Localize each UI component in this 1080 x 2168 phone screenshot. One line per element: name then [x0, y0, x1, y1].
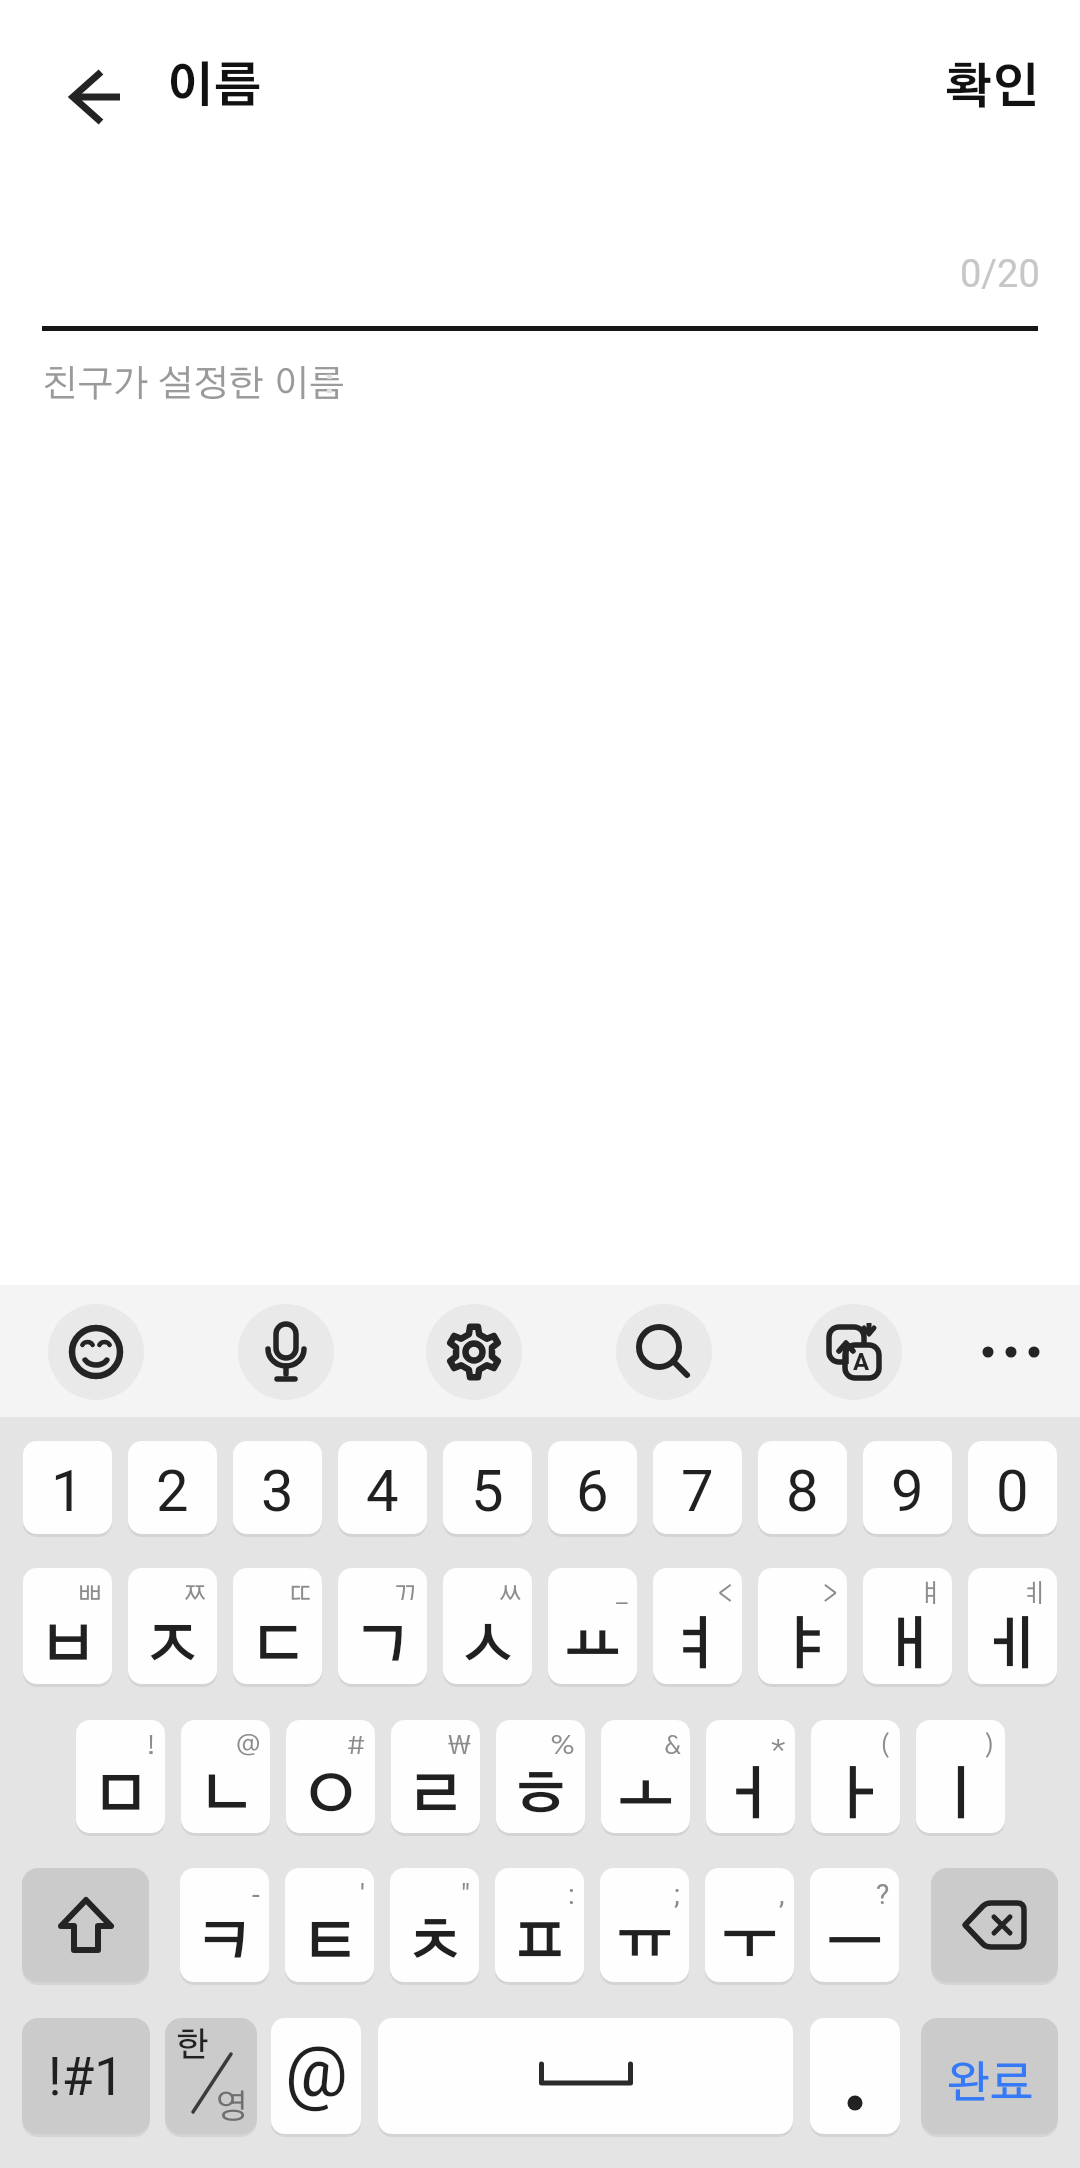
button[interactable]: ,	[705, 1868, 794, 1982]
button[interactable]: ㅒ	[863, 1568, 952, 1684]
button[interactable]	[48, 1304, 144, 1400]
staticText: 5	[471, 1457, 504, 1525]
staticText: ㅠ	[616, 1915, 674, 1973]
staticText: !#1	[48, 2046, 125, 2108]
staticText: ?	[876, 1878, 890, 1911]
staticText: (	[879, 1733, 891, 1759]
staticText: "	[461, 1878, 470, 1911]
staticText: ㄸ	[287, 1581, 313, 1607]
button[interactable]: 5	[443, 1441, 532, 1534]
button[interactable]	[45, 47, 121, 123]
staticText: 0/20	[960, 252, 1040, 297]
staticText: ㅈ	[144, 1618, 202, 1676]
button[interactable]	[22, 1868, 149, 1982]
button[interactable]	[931, 1868, 1058, 1982]
staticText: ㅓ	[722, 1768, 780, 1826]
button[interactable]: '	[285, 1868, 374, 1982]
staticText: 2	[156, 1457, 189, 1525]
staticText: ㅒ	[917, 1581, 943, 1607]
staticText: ㅎ	[512, 1768, 570, 1826]
staticText: ㅅ	[459, 1618, 517, 1676]
button[interactable]: 4	[338, 1441, 427, 1534]
staticText: 완료	[946, 2062, 1034, 2107]
button[interactable]: 8	[758, 1441, 847, 1534]
button[interactable]: 9	[863, 1441, 952, 1534]
staticText: @	[285, 2031, 348, 2113]
button[interactable]: ㄲ	[338, 1568, 427, 1684]
button[interactable]: 1	[23, 1441, 112, 1534]
button[interactable]	[238, 1304, 334, 1400]
button[interactable]: "	[390, 1868, 479, 1982]
button[interactable]: %	[496, 1720, 585, 1833]
staticText: ㅆ	[497, 1581, 523, 1607]
staticText: ㅑ	[774, 1618, 832, 1676]
button[interactable]	[966, 1322, 1056, 1382]
button[interactable]: ㅉ	[128, 1568, 217, 1684]
button[interactable]: -	[180, 1868, 269, 1982]
button[interactable]: ?	[810, 1868, 899, 1982]
staticText: :	[568, 1878, 575, 1911]
button[interactable]: :	[495, 1868, 584, 1982]
button[interactable]	[426, 1304, 522, 1400]
staticText: 한	[176, 2029, 210, 2063]
button[interactable]: *	[706, 1720, 795, 1833]
staticText: #	[347, 1733, 366, 1759]
staticText: -	[252, 1878, 260, 1911]
button[interactable]: 확인	[880, 57, 1040, 121]
staticText: 3	[261, 1457, 294, 1525]
staticText: ㅁ	[92, 1768, 150, 1826]
button[interactable]	[378, 2018, 793, 2134]
button[interactable]: ㅃ	[23, 1568, 112, 1684]
button[interactable]: @	[181, 1720, 270, 1833]
staticText: 8	[786, 1457, 819, 1525]
staticText: A	[853, 1348, 870, 1376]
button[interactable]: 0	[968, 1441, 1057, 1534]
button[interactable]: @	[271, 2018, 361, 2134]
button[interactable]: (	[811, 1720, 900, 1833]
button[interactable]: ㅆ	[443, 1568, 532, 1684]
button[interactable]	[616, 1304, 712, 1400]
button[interactable]	[810, 2018, 900, 2134]
staticText: ;	[674, 1878, 680, 1911]
button[interactable]: )	[916, 1720, 1005, 1833]
button[interactable]: 7	[653, 1441, 742, 1534]
button[interactable]: ₩	[391, 1720, 480, 1833]
staticText: ㅍ	[511, 1915, 569, 1973]
button[interactable]: 완료	[921, 2018, 1058, 2134]
staticText: &	[664, 1733, 681, 1759]
button[interactable]: _	[548, 1568, 637, 1684]
staticText: ㅗ	[617, 1768, 675, 1826]
button[interactable]: 2	[128, 1441, 217, 1534]
button[interactable]: #	[286, 1720, 375, 1833]
button[interactable]: 3	[233, 1441, 322, 1534]
staticText: 영	[215, 2091, 248, 2125]
staticText: *	[771, 1733, 786, 1759]
staticText: 0	[996, 1457, 1029, 1525]
staticText: _	[616, 1581, 628, 1607]
staticText: ㅃ	[77, 1581, 103, 1607]
staticText: ,	[779, 1878, 785, 1911]
button[interactable]: ;	[600, 1868, 689, 1982]
staticText: 6	[576, 1457, 609, 1525]
button[interactable]: !	[76, 1720, 165, 1833]
staticText: 4	[366, 1457, 399, 1525]
button[interactable]: <	[653, 1568, 742, 1684]
button[interactable]: ㅖ	[968, 1568, 1057, 1684]
staticText: ㅕ	[669, 1618, 727, 1676]
staticText: ㅣ	[932, 1768, 990, 1826]
staticText: ㅂ	[39, 1618, 97, 1676]
staticText: ㄲ	[392, 1581, 418, 1607]
staticText: )	[984, 1733, 996, 1759]
button[interactable]: &	[601, 1720, 690, 1833]
staticText: 7	[681, 1457, 714, 1525]
button[interactable]: A	[806, 1304, 902, 1400]
staticText: ㅉ	[182, 1581, 208, 1607]
button[interactable]: ㄸ	[233, 1568, 322, 1684]
staticText: ㅛ	[564, 1618, 622, 1676]
button[interactable]: !#1	[22, 2018, 150, 2134]
button[interactable]: 한	[165, 2018, 257, 2134]
button[interactable]: >	[758, 1568, 847, 1684]
staticText: !	[147, 1733, 156, 1759]
button[interactable]: 6	[548, 1441, 637, 1534]
staticText: ㄴ	[197, 1768, 255, 1826]
